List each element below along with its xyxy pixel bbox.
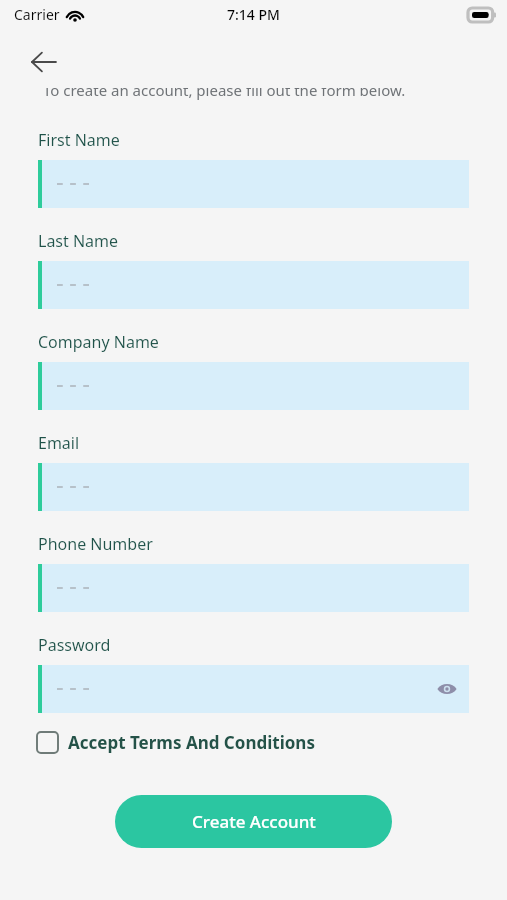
- button[interactable]: Back: [24, 42, 64, 82]
- staticText: 7:14 PM: [227, 5, 280, 24]
- staticText: Carrier: [14, 5, 60, 24]
- button[interactable]: [38, 463, 469, 511]
- staticText: To create an account, please fill out th…: [43, 88, 406, 100]
- button[interactable]: Show password: [38, 665, 469, 713]
- staticText: Email: [38, 432, 80, 454]
- staticText: Create Account: [192, 810, 316, 833]
- button[interactable]: [38, 362, 469, 410]
- button[interactable]: Create Account: [115, 795, 392, 848]
- staticText: Company Name: [38, 331, 159, 353]
- staticText: Accept Terms And Conditions: [68, 731, 315, 754]
- staticText: Last Name: [38, 230, 119, 252]
- button[interactable]: [38, 160, 469, 208]
- button[interactable]: Accept Terms And Conditions: [30, 725, 315, 759]
- button[interactable]: Show password: [427, 669, 467, 709]
- staticText: First Name: [38, 129, 120, 151]
- staticText: Password: [38, 634, 111, 656]
- button[interactable]: [38, 261, 469, 309]
- staticText: Phone Number: [38, 533, 153, 555]
- button[interactable]: [38, 564, 469, 612]
